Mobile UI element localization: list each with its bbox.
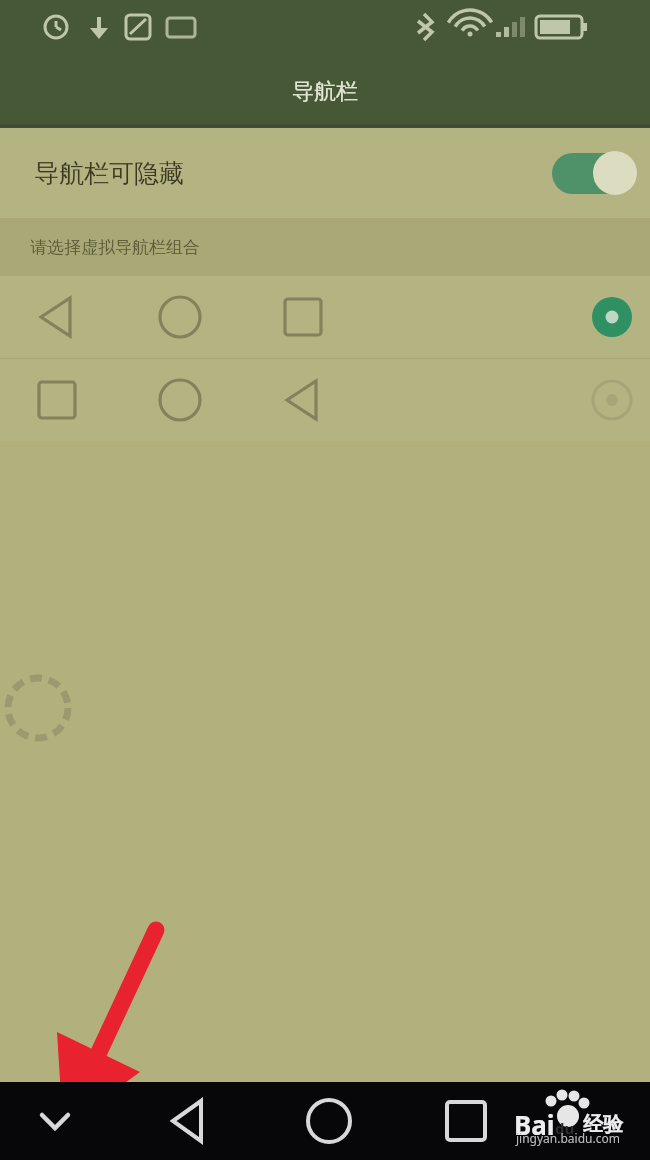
button[interactable]	[0, 276, 650, 358]
staticText: 经验	[583, 1112, 623, 1137]
button[interactable]: Back	[150, 1082, 228, 1160]
button[interactable]: Toggle navigation bar hideable	[551, 151, 637, 195]
staticText: Bai	[514, 1107, 555, 1142]
button[interactable]: Home	[290, 1082, 368, 1160]
button[interactable]: Recent apps	[427, 1082, 505, 1160]
staticText: 请选择虚拟导航栏组合	[30, 237, 200, 258]
button[interactable]: 导航栏可隐藏	[0, 128, 650, 218]
button[interactable]: Hide navigation bar	[20, 1086, 90, 1156]
staticText: du	[555, 1118, 575, 1138]
staticText: 导航栏可隐藏	[34, 158, 184, 189]
button[interactable]	[0, 359, 650, 441]
staticText: jingyan.baidu.com	[516, 1130, 620, 1146]
staticText: 导航栏	[292, 78, 358, 106]
